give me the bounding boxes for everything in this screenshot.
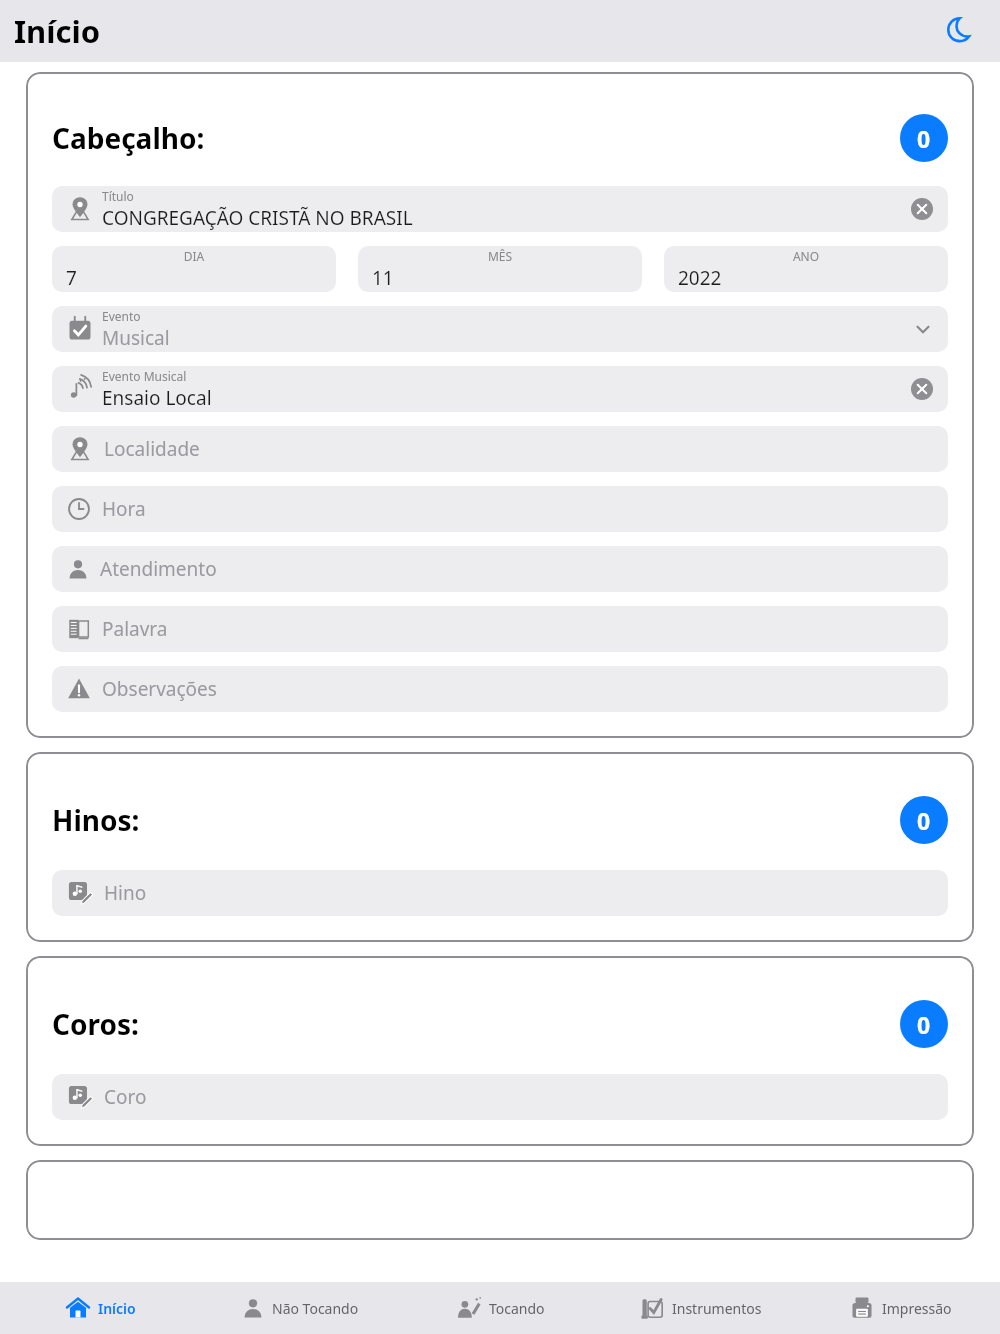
button[interactable]: Coro	[52, 1074, 948, 1120]
staticText: Evento	[102, 308, 141, 324]
staticText: Evento Musical	[102, 368, 187, 384]
staticText: Instrumentos	[672, 1299, 762, 1318]
staticText: CONGREGAÇÃO CRISTÃ NO BRASIL	[102, 205, 413, 231]
staticText: Musical	[102, 325, 170, 351]
button[interactable]: DIA	[52, 246, 336, 292]
staticText: Cabeçalho:	[52, 119, 205, 157]
staticText: Ensaio Local	[102, 385, 212, 411]
staticText: Início	[14, 10, 101, 52]
staticText: Início	[98, 1299, 136, 1318]
button[interactable]: Não Tocando	[200, 1282, 400, 1334]
button[interactable]: 0	[900, 796, 948, 844]
staticText: 7	[66, 265, 77, 291]
staticText: 0	[917, 123, 931, 154]
button[interactable]: Observações	[52, 666, 948, 712]
staticText: Título	[102, 188, 134, 204]
staticText: Hinos:	[52, 801, 140, 839]
button[interactable]: Evento	[52, 306, 948, 352]
staticText: Localidade	[104, 436, 200, 462]
staticText: Não Tocando	[272, 1299, 359, 1318]
button[interactable]: 0	[900, 114, 948, 162]
staticText: Observações	[102, 676, 217, 702]
staticText: Impressão	[882, 1299, 952, 1318]
button[interactable]: Palavra	[52, 606, 948, 652]
staticText: 0	[917, 805, 931, 836]
staticText: DIA	[66, 248, 322, 264]
staticText: 11	[372, 265, 394, 291]
button[interactable]: Hino	[52, 870, 948, 916]
staticText: Hino	[104, 880, 147, 906]
button[interactable]: Instrumentos	[600, 1282, 800, 1334]
button[interactable]: Impressão	[800, 1282, 1000, 1334]
staticText: Atendimento	[100, 556, 217, 582]
staticText: 2022	[678, 265, 722, 291]
staticText: Coros:	[52, 1005, 139, 1043]
button[interactable]: Atendimento	[52, 546, 948, 592]
staticText: Hora	[102, 496, 146, 522]
button[interactable]: 0	[900, 1000, 948, 1048]
staticText: MÊS	[372, 248, 628, 264]
button[interactable]: Modo escuro	[942, 13, 978, 49]
button[interactable]: MÊS	[358, 246, 642, 292]
staticText: Coro	[104, 1084, 147, 1110]
button[interactable]: Evento Musical	[52, 366, 948, 412]
button[interactable]: Título	[52, 186, 948, 232]
staticText: Tocando	[489, 1299, 545, 1318]
button[interactable]: Início	[0, 1282, 200, 1334]
staticText: 0	[917, 1009, 931, 1040]
staticText: Palavra	[102, 616, 168, 642]
button[interactable]: Localidade	[52, 426, 948, 472]
staticText: ANO	[678, 248, 934, 264]
button[interactable]: Hora	[52, 486, 948, 532]
button[interactable]: ANO	[664, 246, 948, 292]
button[interactable]: Tocando	[400, 1282, 600, 1334]
